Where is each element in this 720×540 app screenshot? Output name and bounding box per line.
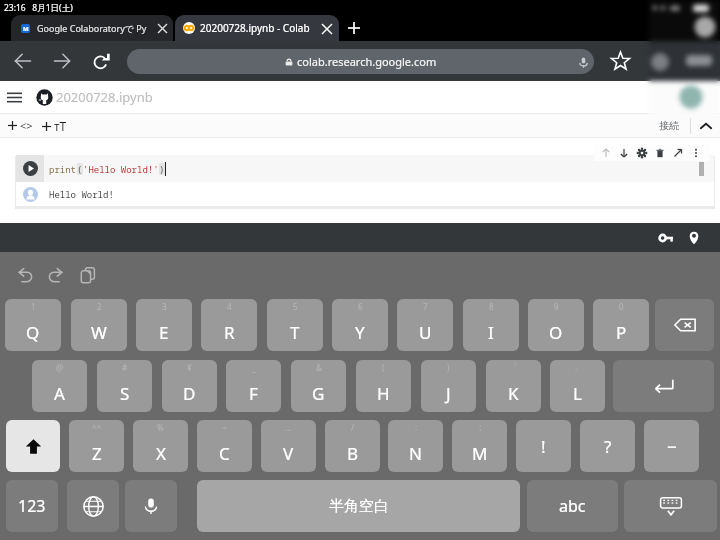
button[interactable]: ；	[452, 420, 507, 472]
button[interactable]: <>	[6, 116, 35, 135]
staticText: S	[120, 382, 130, 405]
button[interactable]: !	[516, 420, 571, 472]
button[interactable]: 6	[332, 299, 388, 351]
staticText: T	[290, 321, 300, 344]
button[interactable]: Forward	[42, 41, 82, 81]
button[interactable]: Addresses	[682, 226, 706, 250]
button[interactable]: 20200728.ipynb - Colab	[175, 15, 339, 41]
button[interactable]: Settings	[633, 145, 651, 161]
button[interactable]: globe	[67, 480, 119, 532]
button[interactable]: backspace	[655, 299, 714, 351]
staticText: I	[488, 321, 494, 344]
button[interactable]: 3	[136, 299, 192, 351]
button[interactable]: Open in new	[669, 145, 687, 161]
staticText: print	[49, 163, 77, 175]
button[interactable]: Delete	[651, 145, 669, 161]
staticText: (	[382, 362, 385, 373]
button[interactable]: Run cell	[23, 161, 38, 176]
button[interactable]: abc	[527, 480, 618, 532]
button[interactable]: 5	[267, 299, 323, 351]
staticText: 5	[293, 301, 298, 312]
staticText: <>	[20, 118, 33, 133]
button[interactable]: ?	[580, 420, 635, 472]
staticText: D	[183, 382, 196, 405]
button[interactable]: Bookmark	[602, 43, 638, 79]
button[interactable]: −	[644, 420, 699, 472]
button[interactable]: ᴛT	[40, 116, 69, 136]
button[interactable]: Collapse	[694, 114, 718, 137]
staticText: H	[377, 382, 390, 405]
button[interactable]: ^^	[69, 420, 124, 472]
staticText: 23:16 8月1日(土)	[4, 2, 73, 14]
button[interactable]: /	[325, 420, 380, 472]
button[interactable]: Move up	[597, 145, 615, 161]
button[interactable]: shift	[6, 420, 60, 472]
button[interactable]: Clipboard	[76, 263, 100, 287]
staticText: _	[252, 362, 256, 373]
button[interactable]: 2	[71, 299, 127, 351]
button[interactable]: Voice search	[572, 51, 594, 73]
button[interactable]: M	[11, 15, 173, 41]
button[interactable]: ¥	[162, 360, 217, 412]
button[interactable]: 「	[486, 360, 541, 412]
staticText: Q	[26, 321, 40, 344]
staticText: 20200728.ipynb - Colab	[200, 21, 310, 35]
staticText: ~	[222, 422, 227, 433]
button[interactable]: _	[226, 360, 281, 412]
button[interactable]: 0	[593, 299, 649, 351]
button[interactable]: 7	[397, 299, 453, 351]
staticText: 半角空白	[329, 497, 389, 516]
staticText: U	[419, 321, 432, 344]
button[interactable]: hide	[624, 480, 717, 532]
staticText: #	[122, 362, 128, 373]
button[interactable]: 半角空白	[197, 480, 520, 532]
button[interactable]: Redo	[44, 263, 68, 287]
button[interactable]: 4	[201, 299, 257, 351]
button[interactable]: …	[261, 420, 316, 472]
staticText: 123	[18, 495, 46, 517]
button[interactable]: )	[421, 360, 476, 412]
button[interactable]: Close tab	[151, 17, 173, 39]
button[interactable]: Reload	[81, 41, 121, 81]
button[interactable]: Close tab	[315, 17, 338, 40]
button[interactable]: &	[291, 360, 346, 412]
button[interactable]: colab.research.google.com	[127, 49, 594, 74]
staticText: )	[159, 163, 165, 175]
button[interactable]: mic	[125, 480, 177, 532]
button[interactable]: @	[32, 360, 87, 412]
staticText: …	[285, 422, 292, 433]
button[interactable]: 」	[550, 360, 605, 412]
button[interactable]: Menu	[0, 83, 29, 112]
button[interactable]: Back	[3, 41, 43, 81]
button[interactable]: #	[97, 360, 152, 412]
button[interactable]: %	[133, 420, 188, 472]
button[interactable]: 1	[5, 299, 61, 351]
staticText: N	[409, 442, 422, 465]
button[interactable]: 接続	[659, 119, 679, 132]
staticText: colab.research.google.com	[297, 54, 437, 69]
button[interactable]: 8	[463, 299, 519, 351]
staticText: Google Colaboratoryで Py	[37, 22, 147, 34]
button[interactable]: Passwords	[654, 226, 678, 250]
button[interactable]: ~	[197, 420, 252, 472]
button[interactable]: New tab	[342, 16, 366, 40]
staticText: B	[347, 442, 359, 465]
button[interactable]: Undo	[13, 263, 37, 287]
button[interactable]: 123	[6, 480, 58, 532]
staticText: 8	[489, 301, 494, 312]
staticText: %	[157, 422, 164, 433]
button[interactable]: (	[356, 360, 411, 412]
staticText: 7	[423, 301, 428, 312]
staticText: M	[472, 442, 488, 465]
staticText: @	[56, 362, 64, 373]
staticText: ^^	[92, 422, 102, 433]
button[interactable]: More	[687, 145, 705, 161]
button[interactable]: Move down	[615, 145, 633, 161]
staticText: &	[316, 362, 322, 373]
button[interactable]: enter	[613, 360, 714, 412]
staticText: 6	[358, 301, 363, 312]
button[interactable]: ：	[388, 420, 443, 472]
button[interactable]: 9	[528, 299, 584, 351]
staticText: ；	[476, 422, 484, 432]
